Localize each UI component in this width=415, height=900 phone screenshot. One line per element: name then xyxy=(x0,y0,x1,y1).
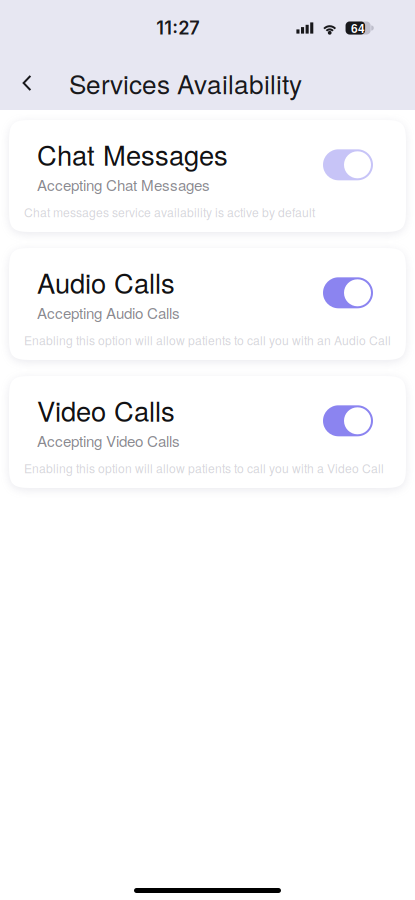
staticText: 11:27 xyxy=(156,17,199,39)
staticText: Enabling this option will allow patients… xyxy=(24,331,391,349)
staticText: Accepting Audio Calls xyxy=(37,301,180,323)
button[interactable]: Audio Calls xyxy=(323,277,373,308)
staticText: Services Availability xyxy=(69,64,302,102)
button[interactable]: Chat Messages xyxy=(323,149,373,180)
staticText: Video Calls xyxy=(37,390,175,429)
button[interactable]: Video Calls xyxy=(323,405,373,436)
staticText: Chat messages service availability is ac… xyxy=(24,203,315,221)
staticText: Audio Calls xyxy=(37,262,175,301)
staticText: Chat Messages xyxy=(37,134,228,173)
staticText: 64 xyxy=(351,19,365,37)
staticText: Accepting Chat Messages xyxy=(37,173,210,195)
staticText: Accepting Video Calls xyxy=(37,429,180,451)
staticText: Enabling this option will allow patients… xyxy=(24,459,384,477)
button[interactable]: Back xyxy=(5,61,49,105)
